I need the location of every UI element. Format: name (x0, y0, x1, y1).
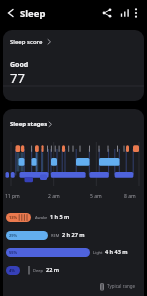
button[interactable]: Sleep stages (3, 109, 144, 296)
staticText: REM (51, 233, 60, 238)
button[interactable] (117, 5, 133, 21)
staticText: 2 h 27 m (62, 231, 85, 238)
staticText: 4 h 43 m (105, 248, 128, 255)
staticText: Sleep score (10, 38, 43, 46)
staticText: Sleep stages (10, 120, 48, 128)
staticText: 4% (9, 268, 15, 273)
button[interactable] (99, 5, 115, 21)
staticText: Deep (33, 268, 43, 273)
staticText: 77 (10, 69, 25, 87)
button[interactable] (130, 5, 143, 21)
staticText: 5 am (90, 193, 102, 200)
staticText: Good (10, 60, 29, 70)
staticText: 55% (9, 250, 18, 255)
staticText: 2 am (48, 193, 60, 200)
button[interactable] (2, 5, 20, 21)
staticText: 8 am (124, 193, 136, 200)
staticText: Awake (35, 215, 48, 220)
staticText: 13% (9, 215, 18, 220)
staticText: 1 h 5 m (50, 213, 70, 220)
staticText: Sleep (20, 7, 46, 20)
staticText: 29% (9, 233, 18, 238)
staticText: Light (93, 250, 103, 255)
staticText: 22 m (46, 266, 60, 273)
staticText: 11 pm (5, 193, 20, 200)
staticText: Typical range (107, 283, 136, 289)
button[interactable]: Sleep score (3, 30, 144, 101)
